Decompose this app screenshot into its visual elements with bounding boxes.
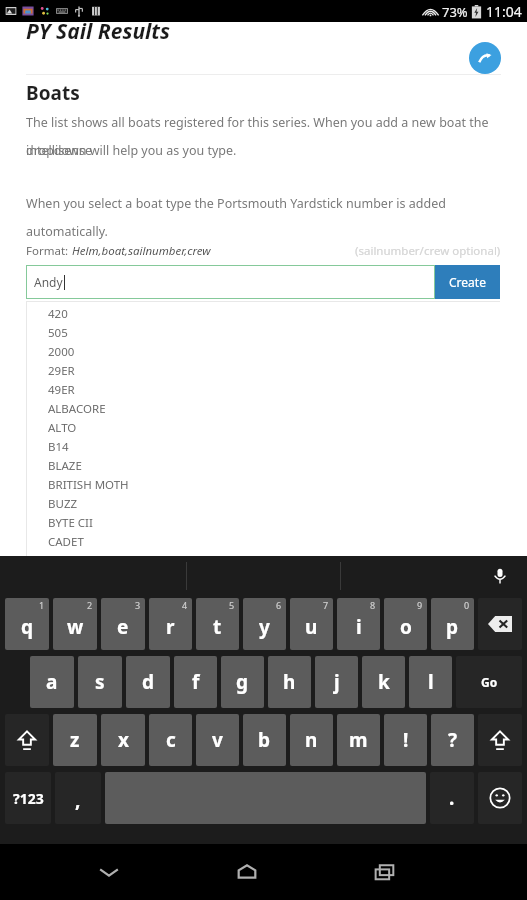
staticText: f	[192, 669, 200, 695]
staticText: 11:04	[486, 2, 522, 21]
button[interactable]: ALTO	[48, 418, 500, 437]
button[interactable]: a	[30, 656, 74, 708]
button[interactable]: Shift	[478, 714, 522, 766]
staticText: 5	[229, 599, 235, 611]
staticText: BUZZ	[48, 496, 78, 512]
button[interactable]: Home	[219, 844, 275, 900]
button[interactable]: 0	[431, 598, 474, 650]
button[interactable]: BYTE CII	[48, 513, 500, 532]
button[interactable]: Emoji	[478, 772, 522, 824]
staticText: d	[142, 669, 155, 695]
button[interactable]: h	[268, 656, 311, 708]
button[interactable]: Backspace	[478, 598, 522, 650]
button[interactable]: 1	[5, 598, 49, 650]
button[interactable]: Shift	[5, 714, 49, 766]
staticText: 3	[135, 599, 141, 611]
button[interactable]: ,	[55, 772, 101, 824]
button[interactable]: j	[315, 656, 358, 708]
button[interactable]: B14	[48, 437, 500, 456]
button[interactable]: v	[196, 714, 239, 766]
button[interactable]: BLAZE	[48, 456, 500, 475]
staticText: Format:	[26, 243, 72, 259]
staticText: PY Sail Results	[26, 17, 170, 46]
staticText: 420	[48, 306, 68, 322]
staticText: u	[305, 614, 318, 640]
staticText: 49ER	[48, 382, 75, 398]
staticText: ?	[448, 727, 458, 753]
button[interactable]: g	[221, 656, 264, 708]
button[interactable]: x	[101, 714, 145, 766]
button[interactable]: Voice input	[487, 563, 513, 589]
button[interactable]: l	[409, 656, 452, 708]
staticText: q	[21, 614, 34, 640]
button[interactable]: ALBACORE	[48, 399, 500, 418]
button[interactable]: 7	[290, 598, 333, 650]
staticText: ALTO	[48, 420, 77, 436]
staticText: i	[356, 614, 362, 640]
button[interactable]: Share	[469, 42, 501, 74]
staticText: 505	[48, 325, 68, 341]
button[interactable]: ?	[431, 714, 474, 766]
staticText: x	[118, 727, 129, 753]
staticText: Create	[449, 274, 486, 290]
button[interactable]: 3	[101, 598, 145, 650]
staticText: 0	[464, 599, 470, 611]
button[interactable]: 505	[48, 323, 500, 342]
button[interactable]: 8	[337, 598, 380, 650]
staticText: v	[212, 727, 223, 753]
staticText: BYTE CII	[48, 515, 93, 531]
staticText: The list shows all boats registered for …	[26, 114, 506, 159]
staticText: s	[95, 669, 105, 695]
staticText: B14	[48, 439, 69, 455]
button[interactable]: 2000	[48, 342, 500, 361]
button[interactable]: 420	[48, 304, 500, 323]
staticText: a	[46, 669, 58, 695]
button[interactable]: 6	[243, 598, 286, 650]
button[interactable]: 29ER	[48, 361, 500, 380]
button[interactable]: .	[430, 772, 474, 824]
staticText: z	[70, 727, 80, 753]
staticText: ALBACORE	[48, 401, 106, 417]
button[interactable]: 5	[196, 598, 239, 650]
staticText: 4	[182, 599, 188, 611]
button[interactable]: 9	[384, 598, 427, 650]
button[interactable]: BUZZ	[48, 494, 500, 513]
button[interactable]: BRITISH MOTH	[48, 475, 500, 494]
button[interactable]: Go	[456, 656, 522, 708]
staticText: .	[449, 785, 455, 811]
button[interactable]: 49ER	[48, 380, 500, 399]
button[interactable]: ?123	[5, 772, 51, 824]
button[interactable]: s	[78, 656, 122, 708]
staticText: m	[349, 727, 368, 753]
staticText: 2	[87, 599, 93, 611]
button[interactable]: c	[149, 714, 192, 766]
button[interactable]: Recent apps	[357, 844, 413, 900]
button[interactable]: d	[126, 656, 170, 708]
button[interactable]: Create	[435, 265, 500, 299]
button[interactable]: CANOE INTERNATIONAL	[48, 551, 500, 570]
button[interactable]: n	[290, 714, 333, 766]
button[interactable]: k	[362, 656, 405, 708]
button[interactable]: Back	[81, 844, 137, 900]
staticText: 2000	[48, 344, 75, 360]
button[interactable]: 4	[149, 598, 192, 650]
button[interactable]: 2	[53, 598, 97, 650]
button[interactable]: z	[53, 714, 97, 766]
button[interactable]: f	[174, 656, 217, 708]
button[interactable]: !	[384, 714, 427, 766]
staticText: o	[400, 614, 412, 640]
staticText: l	[428, 669, 434, 695]
staticText: h	[283, 669, 296, 695]
button[interactable]: m	[337, 714, 380, 766]
staticText: p	[446, 614, 459, 640]
staticText: y	[259, 614, 270, 640]
staticText: r	[166, 614, 175, 640]
button[interactable]: Andy	[26, 265, 435, 299]
staticText: k	[378, 669, 390, 695]
staticText: !	[403, 727, 409, 753]
button[interactable]: b	[243, 714, 286, 766]
staticText: w	[67, 614, 84, 640]
staticText: dropdown will help you as you type.	[26, 142, 237, 159]
button[interactable]: CADET	[48, 532, 500, 551]
